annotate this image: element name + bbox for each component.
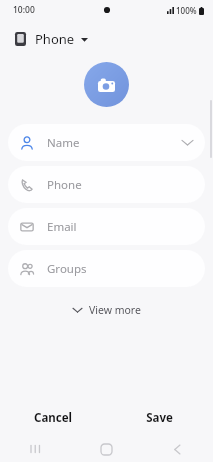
button[interactable]: Add contact photo — [84, 62, 129, 107]
button[interactable]: Recent apps — [0, 436, 71, 462]
button[interactable]: Email — [8, 208, 205, 245]
staticText: View more — [89, 303, 141, 317]
staticText: Phone — [35, 30, 75, 48]
staticText: 100% — [176, 5, 197, 16]
staticText: Name — [47, 135, 80, 151]
staticText: Groups — [47, 261, 87, 277]
staticText: 10:00 — [13, 4, 35, 16]
staticText: Cancel — [34, 410, 72, 426]
staticText: Phone — [47, 177, 82, 193]
button[interactable]: Groups — [8, 250, 205, 287]
button[interactable]: Save — [106, 400, 213, 436]
button[interactable]: Phone — [8, 166, 205, 203]
button[interactable]: Name — [8, 124, 205, 161]
staticText: Save — [146, 410, 173, 426]
button[interactable]: Back — [142, 436, 213, 462]
staticText: Email — [47, 219, 77, 235]
button[interactable]: View more — [65, 299, 149, 321]
button[interactable]: Home — [71, 436, 142, 462]
button[interactable]: Cancel — [0, 400, 106, 436]
button[interactable]: Phone — [13, 26, 90, 52]
